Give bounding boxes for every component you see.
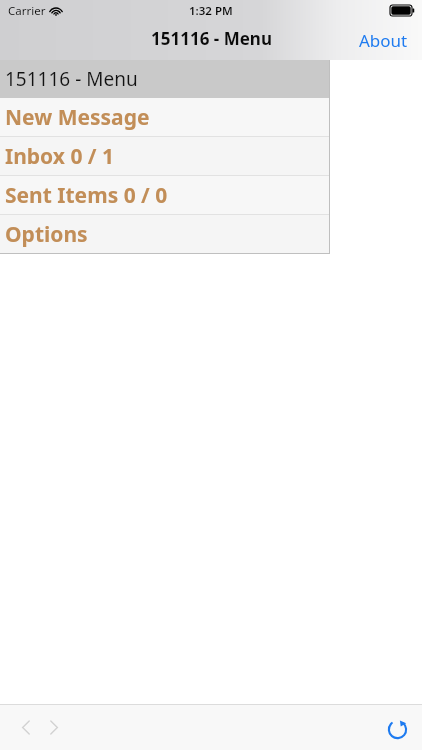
staticText: Inbox 0 / 1 xyxy=(5,142,115,171)
staticText: About xyxy=(359,29,408,52)
staticText: 151116 - Menu xyxy=(5,66,138,92)
button[interactable]: Refresh xyxy=(373,709,422,747)
button[interactable]: Sent Items 0 / 0 xyxy=(0,176,329,214)
staticText: New Message xyxy=(5,103,150,132)
staticText: Sent Items 0 / 0 xyxy=(5,181,168,210)
button[interactable]: Back xyxy=(12,711,40,744)
staticText: 151116 - Menu xyxy=(151,27,272,50)
button[interactable]: New Message xyxy=(0,98,329,136)
button[interactable]: Forward xyxy=(40,711,68,744)
staticText: 1:32 PM xyxy=(189,3,233,19)
staticText: Options xyxy=(5,220,88,249)
button[interactable]: About xyxy=(345,21,422,60)
staticText: Carrier xyxy=(8,3,46,19)
button[interactable]: Options xyxy=(0,215,329,253)
button[interactable]: Inbox 0 / 1 xyxy=(0,137,329,175)
